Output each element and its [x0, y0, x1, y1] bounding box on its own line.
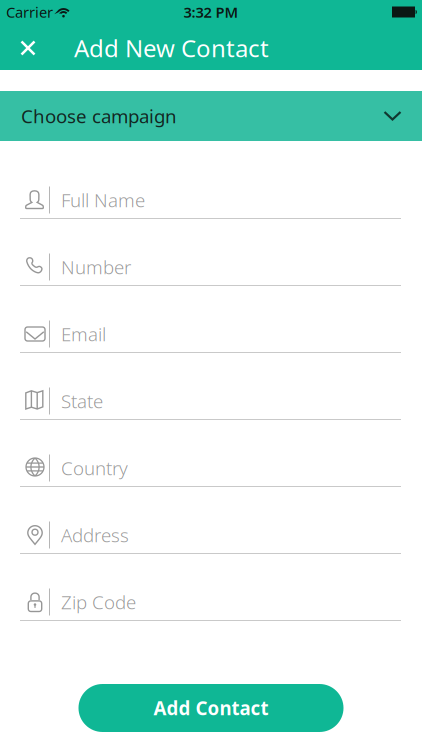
staticText: Email: [61, 322, 106, 346]
staticText: Zip Code: [61, 590, 136, 614]
button[interactable]: Zip Code: [0, 554, 422, 621]
button[interactable]: Country: [0, 420, 422, 487]
staticText: Choose campaign: [21, 104, 177, 128]
staticText: 3:32 PM: [183, 2, 238, 22]
staticText: Add Contact: [153, 696, 268, 720]
button[interactable]: State: [0, 353, 422, 420]
staticText: Add New Contact: [74, 32, 269, 64]
button[interactable]: Choose campaign: [0, 91, 422, 141]
button[interactable]: Full Name: [0, 152, 422, 219]
button[interactable]: Address: [0, 487, 422, 554]
staticText: Address: [61, 523, 129, 547]
staticText: Number: [61, 255, 131, 279]
staticText: State: [61, 389, 103, 413]
staticText: Carrier: [6, 2, 53, 22]
staticText: Country: [61, 456, 128, 480]
button[interactable]: Email: [0, 286, 422, 353]
button[interactable]: Close: [0, 41, 48, 55]
button[interactable]: Number: [0, 219, 422, 286]
staticText: Full Name: [61, 188, 145, 212]
button[interactable]: Add Contact: [78, 684, 343, 732]
